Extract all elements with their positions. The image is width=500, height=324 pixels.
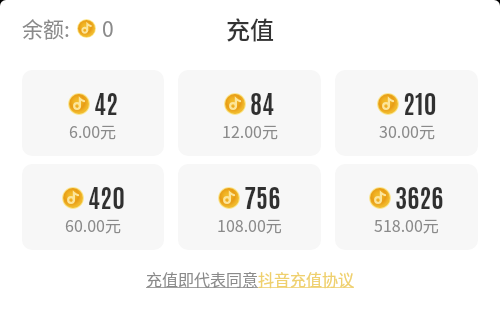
button[interactable]: 756	[178, 164, 321, 250]
button[interactable]: 42	[22, 70, 164, 156]
staticText: 756	[244, 179, 281, 213]
staticText: 充值即代表同意抖音充值协议	[146, 267, 355, 290]
staticText: 12.00元	[222, 119, 278, 142]
staticText: 6.00元	[69, 119, 117, 142]
staticText: 108.00元	[217, 213, 282, 236]
button[interactable]: 充值即代表同意抖音充值协议	[146, 267, 355, 290]
staticText: 210	[403, 85, 437, 119]
other: 抖币	[77, 19, 96, 38]
staticText: 3626	[395, 179, 444, 213]
staticText: 0	[102, 13, 114, 43]
staticText: 84	[250, 85, 275, 119]
staticText: 余额:	[22, 13, 70, 43]
button[interactable]: 210	[335, 70, 478, 156]
staticText: 420	[88, 179, 125, 213]
staticText: 42	[94, 85, 119, 119]
staticText: 518.00元	[374, 213, 439, 236]
staticText: 充值	[226, 11, 274, 46]
button[interactable]: 3626	[335, 164, 478, 250]
staticText: 60.00元	[65, 213, 121, 236]
staticText: 30.00元	[379, 119, 435, 142]
button[interactable]: 420	[22, 164, 164, 250]
button[interactable]: 余额:	[22, 13, 114, 43]
button[interactable]: 84	[178, 70, 321, 156]
